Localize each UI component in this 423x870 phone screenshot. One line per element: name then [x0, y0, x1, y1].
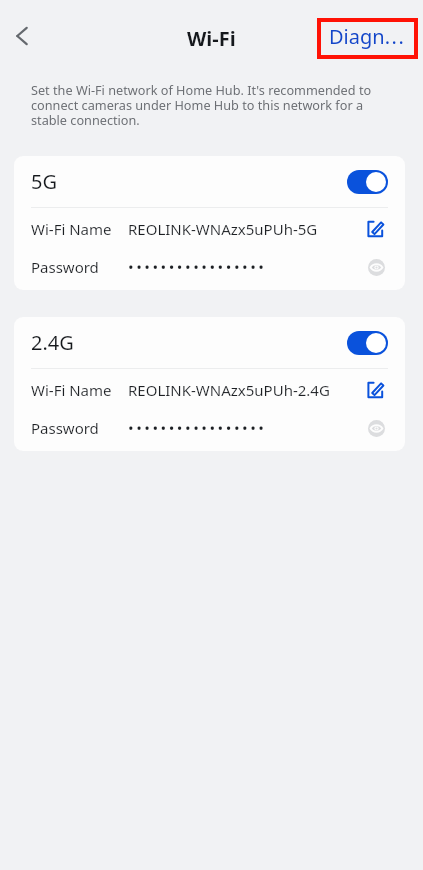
button[interactable]: 5G	[14, 156, 405, 207]
staticText: •••••••••••••••••	[128, 257, 361, 277]
button[interactable]: Toggle network	[347, 170, 388, 194]
staticText: 2.4G	[31, 329, 74, 356]
staticText: REOLINK-WNAzx5uPUh-2.4G	[128, 380, 361, 400]
staticText: •••••••••••••••••	[128, 418, 361, 438]
staticText: Set the Wi-Fi network of Home Hub. It's …	[31, 81, 383, 128]
button[interactable]: Password	[14, 409, 405, 447]
button[interactable]: Edit Wi-Fi name	[361, 214, 391, 244]
staticText: Wi-Fi Name	[31, 219, 128, 239]
staticText: Password	[31, 257, 128, 277]
button[interactable]: Back	[0, 14, 44, 58]
button[interactable]: Show password	[361, 413, 391, 443]
staticText: Diagn...	[329, 23, 406, 50]
staticText: REOLINK-WNAzx5uPUh-5G	[128, 219, 361, 239]
button[interactable]: Wi-Fi Name	[14, 371, 405, 409]
button[interactable]: Wi-Fi Name	[14, 210, 405, 248]
staticText: Wi-Fi	[187, 25, 236, 52]
button[interactable]: Edit Wi-Fi name	[361, 375, 391, 405]
staticText: 5G	[31, 168, 57, 195]
staticText: Password	[31, 418, 128, 438]
button[interactable]: Diagn...	[321, 22, 414, 55]
button[interactable]: 2.4G	[14, 317, 405, 368]
button[interactable]: Toggle network	[347, 331, 388, 355]
staticText: Wi-Fi Name	[31, 380, 128, 400]
button[interactable]: Show password	[361, 252, 391, 282]
button[interactable]: Password	[14, 248, 405, 286]
